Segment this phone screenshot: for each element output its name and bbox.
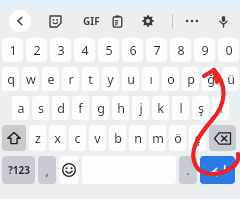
staticText: m bbox=[152, 130, 164, 147]
button[interactable]: h bbox=[112, 96, 129, 120]
button[interactable]: f bbox=[72, 96, 89, 120]
staticText: 2 bbox=[33, 42, 41, 59]
staticText: 5 bbox=[105, 42, 113, 59]
button[interactable]: t bbox=[82, 67, 99, 91]
button[interactable]: e bbox=[42, 67, 59, 91]
button[interactable]: 6 bbox=[122, 38, 143, 62]
staticText: p bbox=[187, 71, 195, 88]
button[interactable]: Backspace bbox=[209, 125, 236, 151]
button[interactable]: ?123 bbox=[2, 156, 35, 184]
button[interactable]: 4 bbox=[74, 38, 95, 62]
staticText: b bbox=[114, 130, 122, 147]
staticText: GIF bbox=[83, 14, 100, 28]
staticText: l bbox=[179, 100, 183, 117]
staticText: k bbox=[157, 100, 164, 117]
button[interactable]: u bbox=[122, 67, 139, 91]
button[interactable]: b bbox=[109, 125, 126, 151]
button[interactable]: 1 bbox=[2, 38, 23, 62]
button[interactable]: Emoji bbox=[59, 156, 79, 184]
button[interactable]: 8 bbox=[170, 38, 191, 62]
button[interactable]: 2 bbox=[26, 38, 47, 62]
button[interactable]: r bbox=[62, 67, 79, 91]
button[interactable]: j bbox=[132, 96, 149, 120]
button[interactable]: Back bbox=[9, 10, 31, 32]
staticText: ö bbox=[174, 130, 182, 147]
staticText: ı bbox=[149, 71, 153, 88]
button[interactable]: ç bbox=[189, 125, 206, 151]
button[interactable]: o bbox=[162, 67, 179, 91]
staticText: d bbox=[57, 100, 65, 117]
button[interactable]: ş bbox=[192, 96, 209, 120]
button[interactable]: x bbox=[49, 125, 66, 151]
staticText: u bbox=[127, 71, 135, 88]
button[interactable]: 7 bbox=[146, 38, 167, 62]
staticText: g bbox=[97, 100, 105, 117]
staticText: q bbox=[7, 71, 15, 88]
button[interactable]: GIF bbox=[76, 8, 106, 34]
button[interactable]: c bbox=[69, 125, 86, 151]
button[interactable]: g bbox=[92, 96, 109, 120]
staticText: 6 bbox=[129, 42, 137, 59]
staticText: 9 bbox=[201, 42, 209, 59]
staticText: y bbox=[107, 71, 114, 88]
staticText: v bbox=[94, 130, 101, 147]
button[interactable]: Stickers bbox=[42, 8, 68, 34]
staticText: 4 bbox=[81, 42, 89, 59]
button[interactable]: Shift bbox=[2, 125, 26, 151]
button[interactable]: z bbox=[29, 125, 46, 151]
staticText: ü bbox=[227, 71, 235, 88]
staticText: h bbox=[117, 100, 125, 117]
staticText: i bbox=[219, 100, 223, 117]
button[interactable]: 9 bbox=[194, 38, 215, 62]
staticText: 3 bbox=[57, 42, 65, 59]
button[interactable]: n bbox=[129, 125, 146, 151]
staticText: ç bbox=[194, 130, 201, 147]
staticText: r bbox=[68, 71, 74, 88]
button[interactable]: m bbox=[149, 125, 166, 151]
button[interactable]: Voice input bbox=[210, 8, 236, 34]
button[interactable]: p bbox=[182, 67, 199, 91]
button[interactable]: , bbox=[38, 156, 56, 184]
button[interactable]: d bbox=[52, 96, 69, 120]
staticText: 0 bbox=[225, 42, 233, 59]
staticText: ?123 bbox=[8, 163, 30, 177]
button[interactable]: . bbox=[179, 156, 197, 184]
button[interactable]: 3 bbox=[50, 38, 71, 62]
button[interactable]: Enter bbox=[200, 156, 235, 184]
staticText: f bbox=[78, 100, 83, 117]
staticText: j bbox=[139, 100, 143, 117]
button[interactable]: Clipboard bbox=[104, 8, 130, 34]
button[interactable]: Settings bbox=[135, 8, 161, 34]
staticText: w bbox=[26, 71, 36, 88]
button[interactable]: k bbox=[152, 96, 169, 120]
button[interactable]: y bbox=[102, 67, 119, 91]
staticText: t bbox=[88, 71, 93, 88]
staticText: ğ bbox=[207, 71, 215, 88]
button[interactable]: ö bbox=[169, 125, 186, 151]
button[interactable]: ğ bbox=[202, 67, 219, 91]
button[interactable]: v bbox=[89, 125, 106, 151]
staticText: n bbox=[134, 130, 142, 147]
button[interactable]: s bbox=[32, 96, 49, 120]
button[interactable]: q bbox=[2, 67, 19, 91]
staticText: x bbox=[54, 130, 61, 147]
button[interactable]: i bbox=[212, 96, 229, 120]
staticText: s bbox=[38, 100, 44, 117]
button[interactable]: w bbox=[22, 67, 39, 91]
button[interactable]: l bbox=[172, 96, 189, 120]
staticText: . bbox=[186, 162, 190, 178]
staticText: 1 bbox=[9, 42, 17, 59]
staticText: a bbox=[17, 100, 25, 117]
staticText: 8 bbox=[177, 42, 185, 59]
button[interactable]: ü bbox=[222, 67, 239, 91]
button[interactable]: 0 bbox=[218, 38, 239, 62]
button[interactable]: 5 bbox=[98, 38, 119, 62]
button[interactable]: a bbox=[12, 96, 29, 120]
button[interactable]: ı bbox=[142, 67, 159, 91]
staticText: c bbox=[74, 130, 81, 147]
staticText: , bbox=[45, 162, 49, 178]
staticText: e bbox=[47, 71, 55, 88]
button[interactable]: More options bbox=[179, 8, 205, 34]
staticText: ş bbox=[198, 100, 204, 117]
